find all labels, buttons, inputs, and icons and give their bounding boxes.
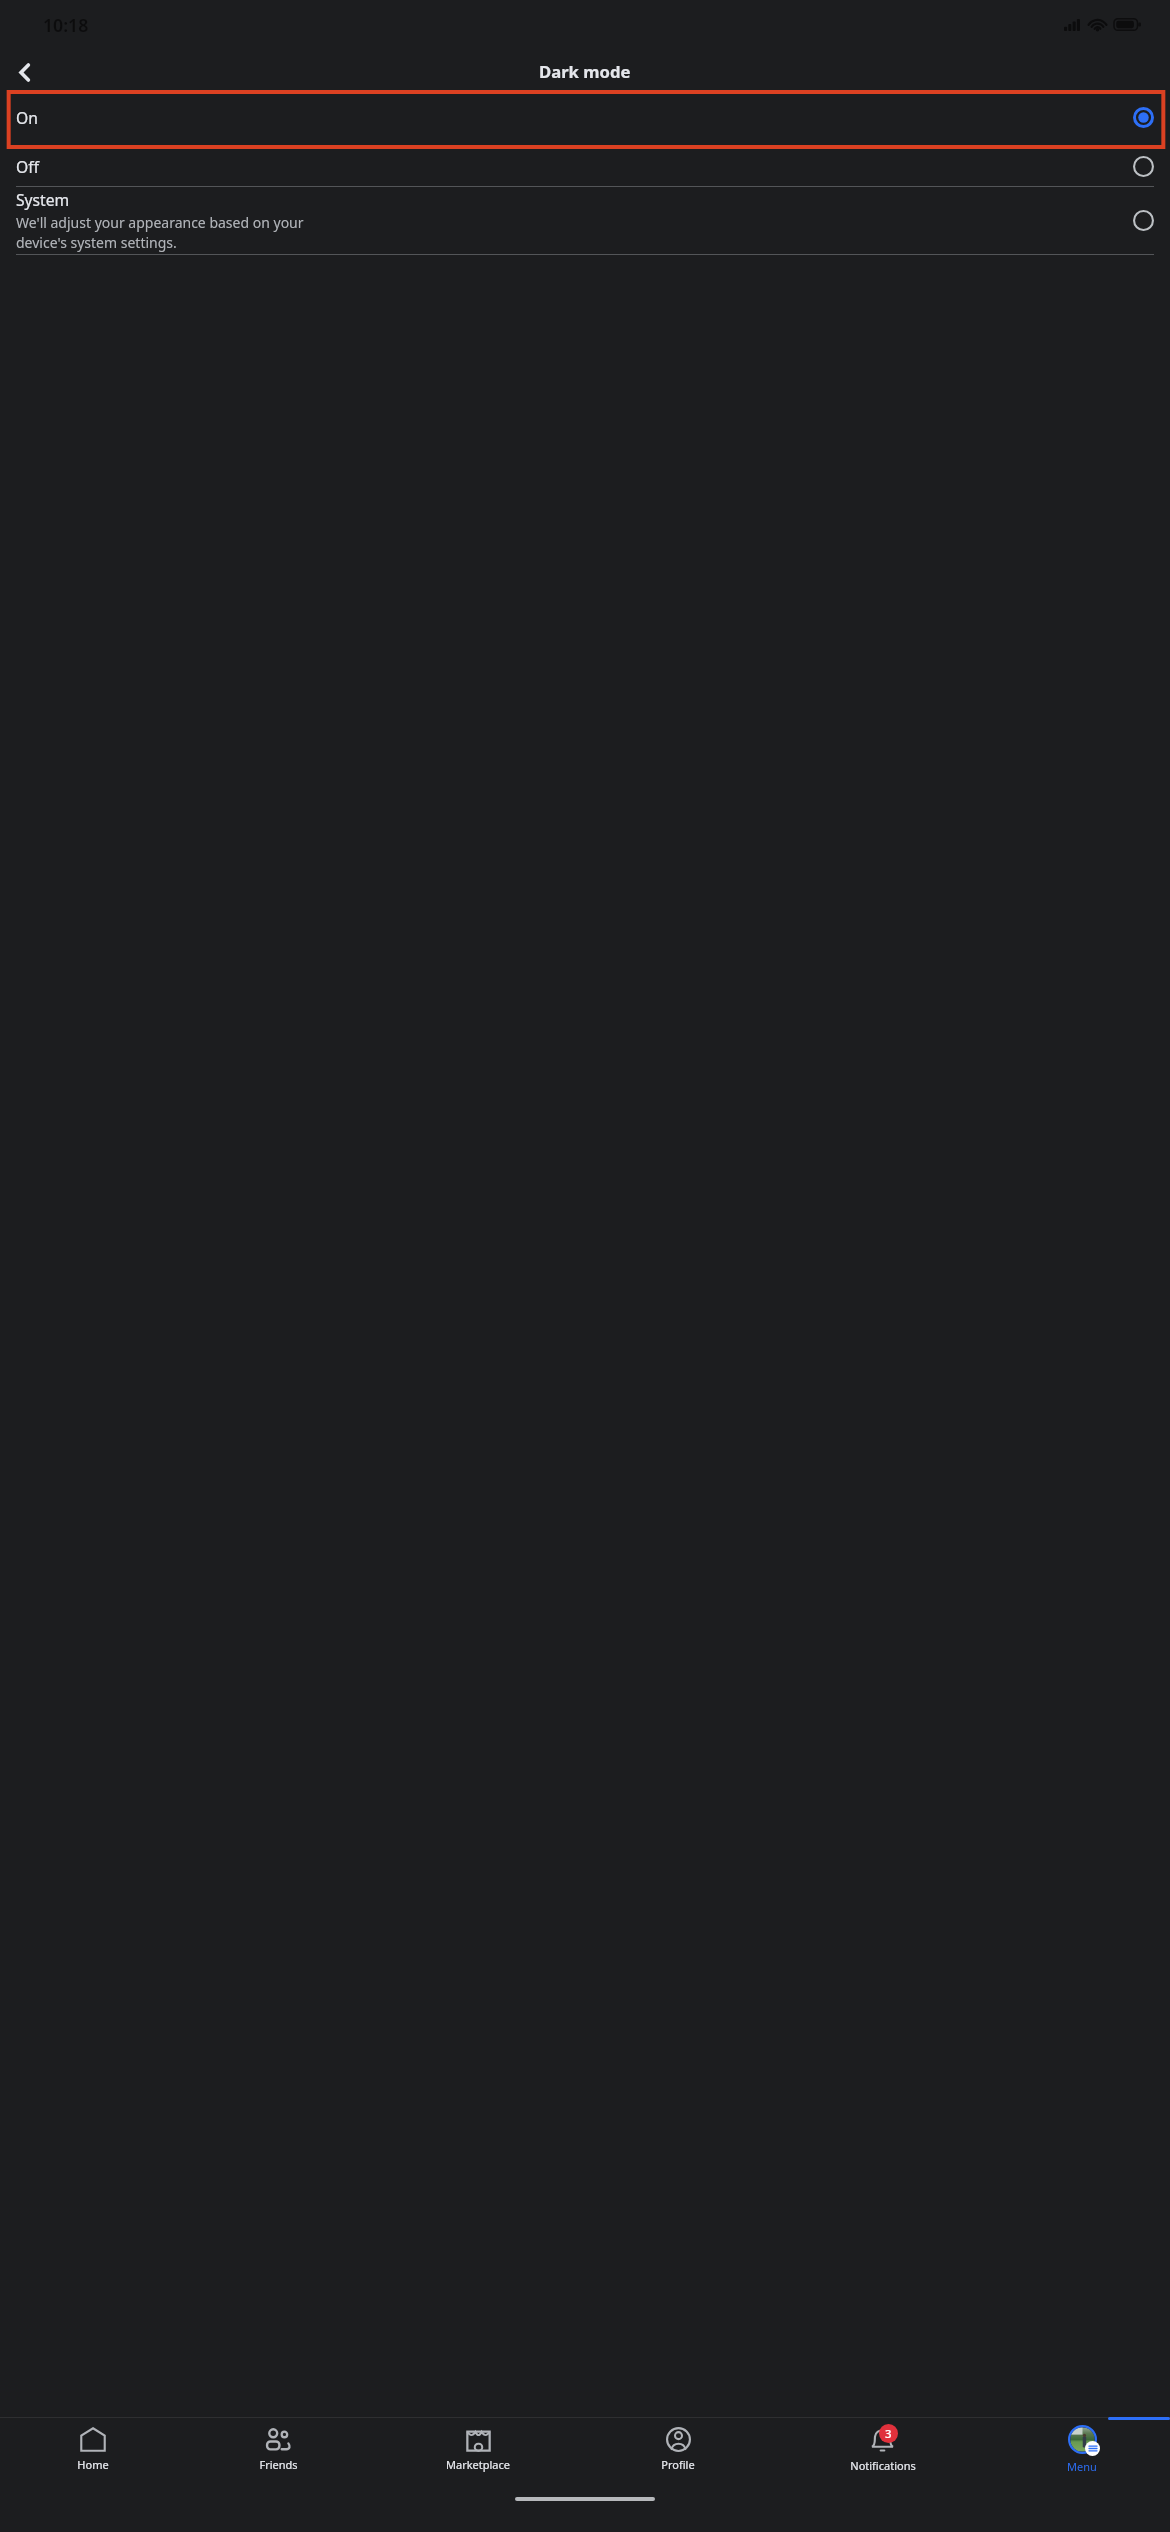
staticText: Profile xyxy=(661,2457,695,2472)
button[interactable]: System xyxy=(0,187,1170,255)
staticText: We'll adjust your appearance based on yo… xyxy=(16,213,329,252)
staticText: Dark mode xyxy=(539,60,631,83)
staticText: Marketplace xyxy=(446,2457,510,2472)
staticText: System xyxy=(16,189,70,210)
staticText: Notifications xyxy=(850,2458,916,2473)
button[interactable]: Home xyxy=(0,2418,185,2481)
button[interactable]: 3 xyxy=(771,2418,994,2481)
button[interactable]: Menu xyxy=(994,2418,1170,2481)
staticText: 10:18 xyxy=(43,13,89,37)
button[interactable]: Back xyxy=(8,56,40,88)
button[interactable]: On xyxy=(0,90,1170,146)
staticText: 3 xyxy=(885,2426,892,2441)
button[interactable]: Profile xyxy=(585,2418,771,2481)
staticText: On xyxy=(16,107,38,128)
button[interactable]: Marketplace xyxy=(371,2418,585,2481)
staticText: Off xyxy=(16,156,39,177)
button[interactable]: Off xyxy=(0,146,1170,187)
staticText: Home xyxy=(77,2457,109,2472)
staticText: Menu xyxy=(1067,2459,1097,2474)
button[interactable]: Friends xyxy=(185,2418,371,2481)
staticText: Friends xyxy=(259,2457,298,2472)
